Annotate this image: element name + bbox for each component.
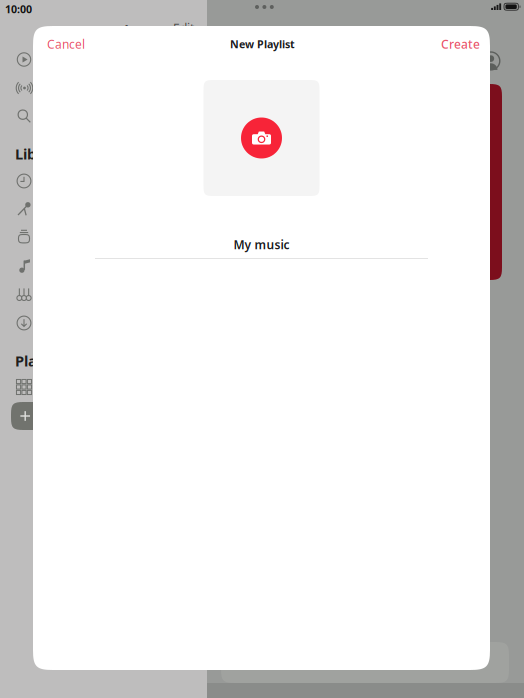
staticText: Library xyxy=(15,144,66,163)
staticText: Music xyxy=(88,21,138,44)
button[interactable]: Choose playlist artwork xyxy=(203,80,319,196)
staticText: 10:00 xyxy=(5,2,32,16)
button[interactable]: Create xyxy=(434,29,487,59)
button[interactable]: Recently Added xyxy=(0,167,180,195)
button[interactable]: Artists xyxy=(0,195,180,223)
button[interactable]: All Playlists xyxy=(0,373,180,401)
button[interactable]: Search xyxy=(0,102,180,130)
staticText: Edit xyxy=(173,20,194,36)
staticText: Cancel xyxy=(47,36,85,52)
button[interactable]: Edit xyxy=(169,19,198,37)
staticText: Playlists xyxy=(15,351,73,370)
staticText: New Playlist xyxy=(230,37,295,51)
button[interactable]: Downloaded xyxy=(0,309,180,337)
staticText: My music xyxy=(233,236,289,252)
button[interactable]: Albums xyxy=(0,222,180,250)
button[interactable]: Songs xyxy=(0,252,180,280)
button[interactable]: Cancel xyxy=(40,29,92,59)
button[interactable]: Now Playing xyxy=(0,45,180,73)
button[interactable]: Radio xyxy=(0,74,180,102)
button[interactable]: New Playlist xyxy=(11,402,197,430)
button[interactable]: Genres xyxy=(0,280,180,308)
staticText: Create xyxy=(441,36,480,52)
